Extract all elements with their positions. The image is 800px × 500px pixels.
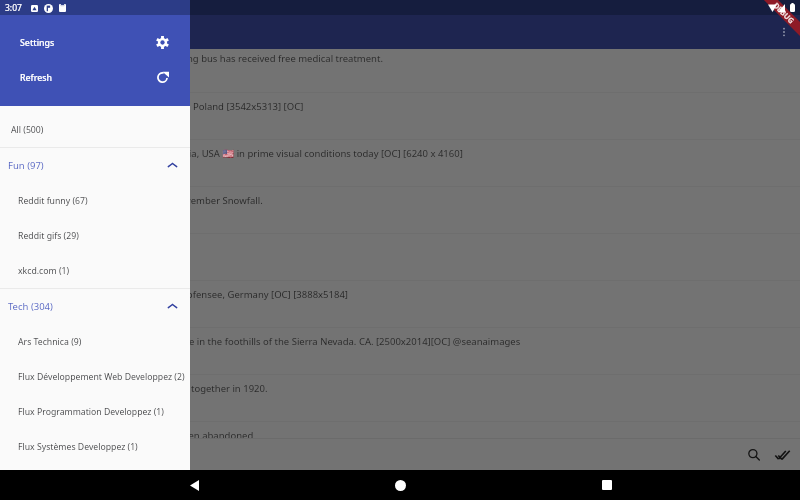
- button[interactable]: Flux Développement Web Developpez (2): [0, 359, 190, 394]
- staticText: First real November Snowfall.: [132, 194, 263, 207]
- button[interactable]: A place that has been abandoned: [0, 422, 800, 438]
- button[interactable]: More options: [771, 19, 797, 45]
- staticText: Ars Technica (9): [18, 336, 82, 348]
- button[interactable]: Home: [387, 472, 413, 498]
- button[interactable]: [0, 234, 800, 280]
- staticText: Sunrise at the Hopfensee, Germany [OC] […: [110, 288, 348, 301]
- button[interactable]: Reddit gifs (29): [0, 218, 190, 253]
- button[interactable]: Mt. Shasta, California, USA 🇺🇸 in prime …: [0, 140, 800, 186]
- staticText: Refresh: [20, 72, 53, 84]
- button[interactable]: Settings: [0, 25, 190, 60]
- staticText: A man injured in the Beijing bus has rec…: [75, 52, 383, 65]
- button[interactable]: First real November Snowfall.: [0, 187, 800, 233]
- staticText: Flux Programmation Developpez (1): [18, 406, 164, 418]
- button[interactable]: Flux Programmation Developpez (1): [0, 394, 190, 429]
- staticText: All (500): [11, 124, 44, 136]
- staticText: Flux Développement Web Developpez (2): [18, 371, 185, 383]
- button[interactable]: Autumn in Bieszczady, Poland [3542x5313]…: [0, 93, 800, 139]
- button[interactable]: Reddit funny (67): [0, 183, 190, 218]
- button[interactable]: Fall colour change in the foothills of t…: [0, 328, 800, 374]
- button[interactable]: Recents: [594, 472, 620, 498]
- staticText: The last time they were together in 1920…: [85, 382, 268, 395]
- staticText: Fall colour change in the foothills of t…: [113, 335, 521, 348]
- staticText: Mt. Shasta, California, USA 🇺🇸 in prime …: [102, 147, 463, 160]
- button[interactable]: Ars Technica (9): [0, 324, 190, 359]
- button[interactable]: Refresh: [0, 60, 190, 95]
- button[interactable]: Fun (97): [0, 148, 190, 183]
- button[interactable]: All (500): [0, 112, 190, 147]
- button[interactable]: Mark all read: [768, 441, 796, 469]
- staticText: Reddit gifs (29): [18, 230, 79, 242]
- button[interactable]: The last time they were together in 1920…: [0, 375, 800, 421]
- staticText: Tech (304): [8, 300, 53, 313]
- button[interactable]: Search: [740, 441, 768, 469]
- button[interactable]: Back: [181, 472, 207, 498]
- staticText: 3:07: [5, 2, 22, 14]
- staticText: Settings: [20, 37, 55, 49]
- staticText: Autumn in Bieszczady, Poland [3542x5313]…: [91, 100, 304, 113]
- button[interactable]: A man injured in the Beijing bus has rec…: [0, 49, 800, 92]
- staticText: A place that has been abandoned: [104, 429, 254, 438]
- staticText: DEBUG: [771, 0, 797, 26]
- staticText: Flux Systèmes Developpez (1): [18, 441, 138, 453]
- button[interactable]: Flux Systèmes Developpez (1): [0, 429, 190, 464]
- button[interactable]: xkcd.com (1): [0, 253, 190, 288]
- button[interactable]: Sunrise at the Hopfensee, Germany [OC] […: [0, 281, 800, 327]
- staticText: Reddit funny (67): [18, 195, 88, 207]
- staticText: xkcd.com (1): [18, 265, 70, 277]
- staticText: Fun (97): [8, 159, 44, 172]
- button[interactable]: Tech (304): [0, 289, 190, 324]
